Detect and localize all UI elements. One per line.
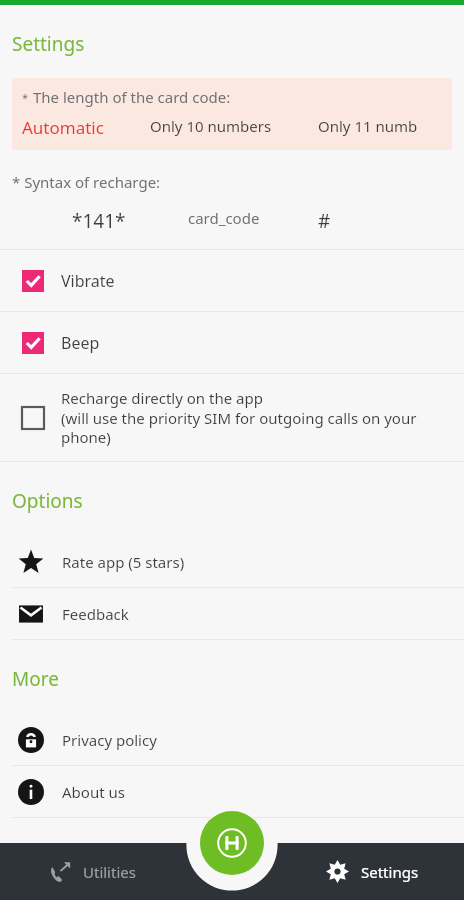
staticText: Only 10 numbers <box>150 116 272 136</box>
button[interactable]: Recharge <box>200 811 264 875</box>
button[interactable]: Settings <box>280 843 464 900</box>
staticText: Privacy policy <box>62 730 157 750</box>
staticText: Vibrate <box>61 270 115 292</box>
button[interactable]: Privacy policy <box>0 714 464 765</box>
staticText: card_code <box>188 208 260 228</box>
staticText: Settings <box>12 31 85 57</box>
staticText: More <box>12 666 59 692</box>
staticText: # <box>318 208 331 234</box>
button[interactable]: Recharge directly on the app <box>0 374 464 461</box>
button[interactable]: About us <box>0 766 464 817</box>
staticText: Only 11 numb <box>318 116 418 136</box>
staticText: (will use the priority SIM for outgoing … <box>61 408 450 447</box>
button[interactable]: * Syntax of recharge: <box>0 172 464 192</box>
staticText: Options <box>12 488 83 514</box>
staticText: Recharge directly on the app <box>61 388 263 408</box>
staticText: Settings <box>361 862 419 882</box>
staticText: Utilities <box>83 862 136 882</box>
button[interactable]: * <box>12 78 452 150</box>
staticText: Feedback <box>62 604 129 624</box>
staticText: About us <box>62 782 125 802</box>
staticText: Automatic <box>22 116 104 139</box>
button[interactable]: Rate app (5 stars) <box>0 536 464 587</box>
button[interactable]: Vibrate <box>0 250 464 311</box>
button[interactable]: Feedback <box>0 588 464 639</box>
staticText: * Syntax of recharge: <box>12 172 161 192</box>
staticText: The length of the card code: <box>33 87 231 107</box>
button[interactable]: Beep <box>0 312 464 373</box>
staticText: Rate app (5 stars) <box>62 552 185 572</box>
staticText: Beep <box>61 332 100 354</box>
button[interactable]: Utilities <box>0 843 184 900</box>
staticText: *141* <box>72 208 126 234</box>
staticText: * <box>22 90 29 105</box>
